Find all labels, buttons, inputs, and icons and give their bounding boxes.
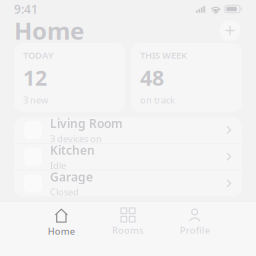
- button[interactable]: Home: [28, 202, 95, 256]
- button[interactable]: TODAY: [14, 43, 125, 112]
- button[interactable]: Kitchen: [14, 144, 242, 170]
- staticText: Rooms: [112, 224, 144, 236]
- staticText: Living Room: [50, 115, 123, 131]
- staticText: Profile: [180, 224, 210, 236]
- staticText: Home: [14, 15, 84, 46]
- staticText: Garage: [50, 169, 93, 185]
- button[interactable]: Rooms: [95, 202, 161, 256]
- button[interactable]: Garage: [14, 170, 242, 196]
- staticText: Idle: [50, 159, 66, 171]
- staticText: 12: [23, 63, 47, 92]
- staticText: 3 devices on: [50, 132, 102, 145]
- button[interactable]: Profile: [161, 202, 228, 256]
- staticText: TODAY: [23, 49, 54, 61]
- staticText: on track: [140, 94, 175, 106]
- staticText: 9:41: [14, 1, 38, 17]
- staticText: 48: [140, 63, 164, 92]
- staticText: THIS WEEK: [140, 49, 187, 61]
- button[interactable]: Add: [218, 18, 242, 42]
- staticText: Kitchen: [50, 142, 95, 158]
- staticText: Closed: [50, 186, 79, 198]
- staticText: 3 new: [23, 94, 48, 106]
- staticText: Home: [48, 225, 75, 237]
- button[interactable]: Living Room: [14, 117, 242, 143]
- button[interactable]: THIS WEEK: [131, 43, 242, 112]
